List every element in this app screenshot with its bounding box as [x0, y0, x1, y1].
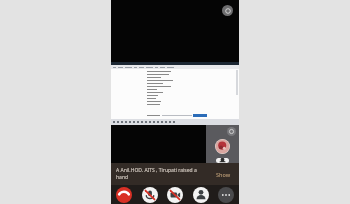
- staticText: A Anil.HOD. AITS , Tirupati raised a han…: [116, 167, 213, 181]
- button[interactable]: [216, 158, 229, 163]
- button[interactable]: More options: [218, 187, 234, 203]
- staticText: Show: [216, 171, 231, 178]
- button[interactable]: [111, 62, 239, 125]
- button[interactable]: A Anil.HOD. AITS , Tirupati raised a han…: [111, 163, 239, 185]
- button[interactable]: Turn on camera: [167, 187, 183, 203]
- button[interactable]: Unmute microphone: [142, 187, 158, 203]
- button[interactable]: End call: [116, 187, 132, 203]
- button[interactable]: More options: [227, 127, 236, 136]
- button[interactable]: [215, 139, 230, 154]
- button[interactable]: Participants: [193, 187, 209, 203]
- button[interactable]: Show: [213, 169, 234, 180]
- button[interactable]: Switch camera: [222, 5, 233, 16]
